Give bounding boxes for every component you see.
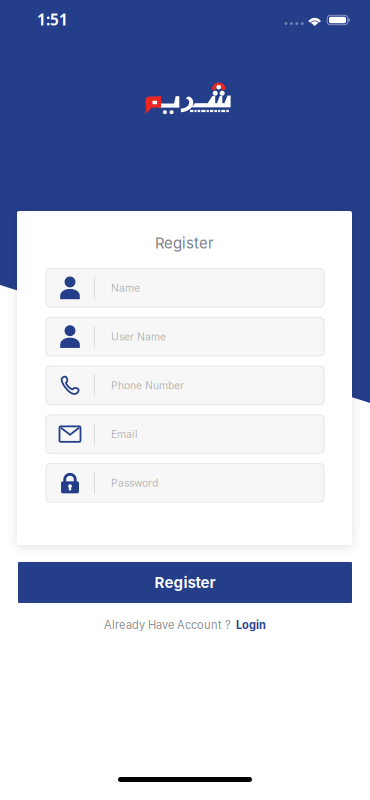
staticText: Name [111, 282, 140, 294]
button[interactable]: Email [46, 415, 324, 453]
button[interactable]: Login [236, 618, 266, 632]
staticText: Already Have Account ? [104, 618, 231, 632]
staticText: Email [111, 428, 138, 440]
staticText: Password [111, 477, 158, 489]
staticText: Phone Number [111, 379, 184, 392]
staticText: User Name [111, 330, 166, 343]
staticText: 1:51 [37, 9, 68, 30]
button[interactable]: Password [46, 464, 324, 502]
button[interactable]: Phone Number [46, 366, 324, 405]
staticText: Register [155, 234, 214, 252]
button[interactable]: Name [46, 269, 324, 307]
staticText: Register [154, 573, 215, 592]
button[interactable]: Register [18, 562, 352, 603]
staticText: Login [236, 618, 266, 632]
button[interactable]: User Name [46, 317, 324, 356]
